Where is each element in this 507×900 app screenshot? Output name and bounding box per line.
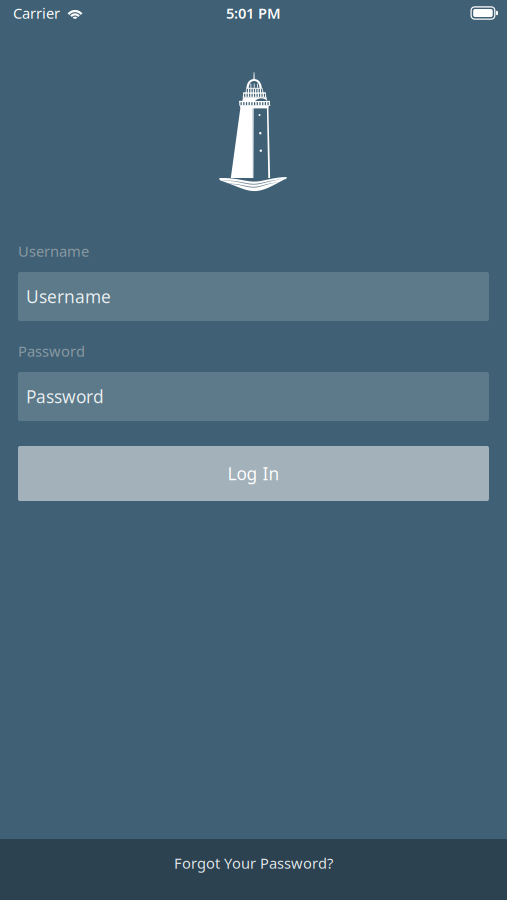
button[interactable]: Username	[18, 272, 489, 321]
button[interactable]: Forgot Your Password?	[0, 839, 507, 900]
staticText: Carrier	[13, 3, 60, 23]
staticText: Log In	[227, 462, 279, 485]
staticText: Username	[26, 285, 111, 308]
staticText: Forgot Your Password?	[174, 853, 333, 873]
staticText: 5:01 PM	[226, 3, 281, 23]
button[interactable]: Password	[18, 372, 489, 421]
staticText: Username	[18, 241, 89, 261]
staticText: Password	[26, 385, 104, 408]
button[interactable]: Log In	[18, 446, 489, 501]
staticText: Password	[18, 341, 85, 361]
